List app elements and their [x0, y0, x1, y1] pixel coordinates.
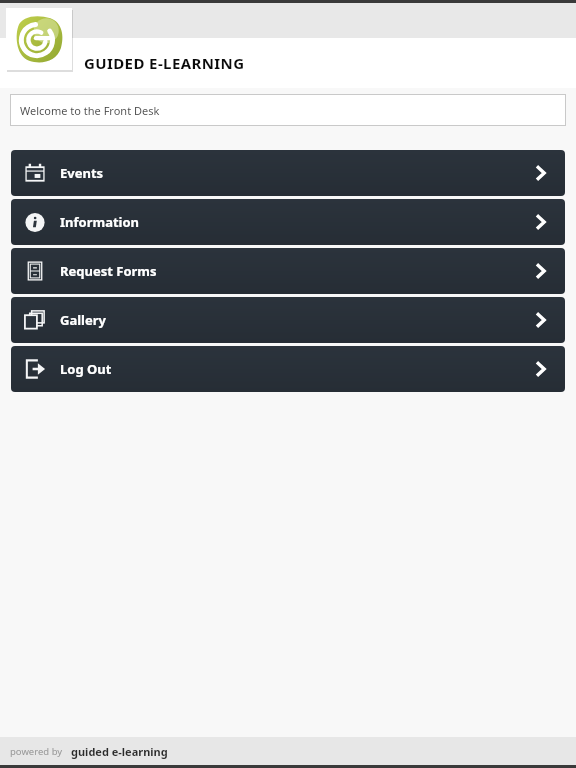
- staticText: Events: [60, 164, 104, 182]
- staticText: guided e-learning: [71, 744, 168, 759]
- staticText: Welcome to the Front Desk: [20, 103, 160, 118]
- button[interactable]: Information: [11, 199, 565, 245]
- staticText: Request Forms: [60, 262, 157, 280]
- button[interactable]: Log Out: [11, 346, 565, 392]
- button[interactable]: Gallery: [11, 297, 565, 343]
- staticText: powered by: [10, 745, 63, 758]
- button[interactable]: Events: [11, 150, 565, 196]
- staticText: Log Out: [60, 360, 112, 378]
- button[interactable]: Request Forms: [11, 248, 565, 294]
- staticText: Information: [60, 213, 140, 231]
- staticText: GUIDED E-LEARNING: [84, 53, 245, 73]
- staticText: Gallery: [60, 311, 106, 329]
